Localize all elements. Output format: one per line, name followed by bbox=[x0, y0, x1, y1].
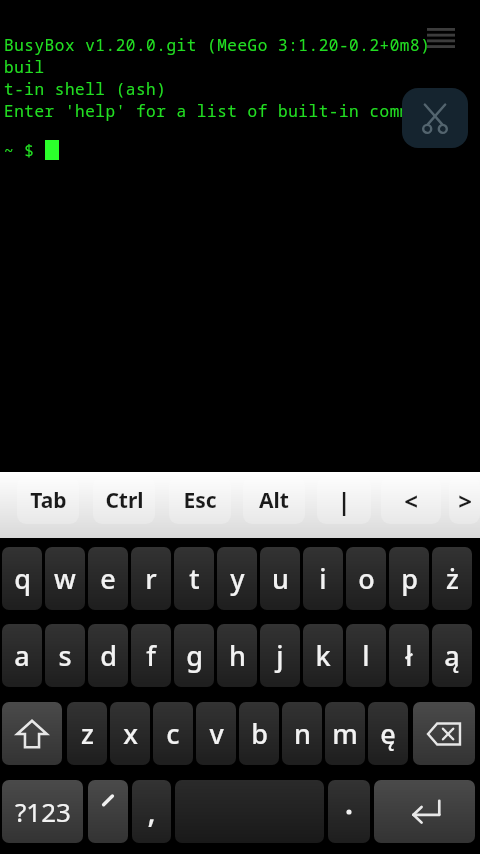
button[interactable]: Backspace bbox=[413, 702, 475, 765]
staticText: < bbox=[404, 484, 418, 517]
button[interactable]: ?123 bbox=[2, 780, 83, 843]
staticText: h bbox=[229, 637, 246, 674]
staticText: t bbox=[189, 560, 200, 597]
staticText: l bbox=[362, 637, 370, 674]
button[interactable]: j bbox=[260, 624, 300, 687]
button[interactable]: g bbox=[174, 624, 214, 687]
button[interactable]: > bbox=[449, 476, 480, 524]
button[interactable]: Cut bbox=[402, 88, 468, 148]
staticText: t-in shell (ash) bbox=[4, 78, 167, 100]
staticText: w bbox=[54, 560, 76, 597]
button[interactable]: w bbox=[45, 547, 85, 610]
button[interactable]: < bbox=[381, 476, 441, 524]
staticText: b bbox=[251, 715, 268, 752]
staticText: x bbox=[123, 715, 138, 752]
staticText: BusyBox v1.20.0.git (MeeGo 3:1.20-0.2+0m… bbox=[4, 34, 480, 78]
button[interactable]: c bbox=[153, 702, 193, 765]
staticText: Tab bbox=[30, 486, 67, 515]
staticText: c bbox=[166, 715, 180, 752]
staticText: s bbox=[58, 637, 72, 674]
button[interactable]: Space bbox=[175, 780, 324, 843]
button[interactable]: Ctrl bbox=[93, 476, 155, 524]
staticText: y bbox=[230, 560, 245, 597]
staticText: | bbox=[337, 484, 351, 517]
button[interactable]: ż bbox=[432, 547, 472, 610]
staticText: ?123 bbox=[15, 794, 71, 829]
button[interactable]: f bbox=[131, 624, 171, 687]
staticText: p bbox=[401, 560, 418, 597]
button[interactable]: n bbox=[282, 702, 322, 765]
staticText: Ctrl bbox=[105, 486, 144, 515]
button[interactable]: y bbox=[217, 547, 257, 610]
button[interactable]: ą bbox=[432, 624, 472, 687]
button[interactable]: i bbox=[303, 547, 343, 610]
staticText: , bbox=[147, 791, 156, 832]
staticText: Esc bbox=[183, 486, 217, 515]
button[interactable]: t bbox=[174, 547, 214, 610]
button[interactable]: l bbox=[346, 624, 386, 687]
staticText: g bbox=[186, 637, 203, 674]
staticText: k bbox=[315, 637, 331, 674]
button[interactable]: ę bbox=[368, 702, 408, 765]
button[interactable]: ł bbox=[389, 624, 429, 687]
button[interactable]: a bbox=[2, 624, 42, 687]
button[interactable]: e bbox=[88, 547, 128, 610]
staticText: o bbox=[358, 560, 375, 597]
button[interactable]: Shift bbox=[2, 702, 62, 765]
staticText: Alt bbox=[259, 486, 289, 515]
button[interactable]: z bbox=[67, 702, 107, 765]
button[interactable]: q bbox=[2, 547, 42, 610]
button[interactable]: Period bbox=[328, 780, 370, 843]
staticText: a bbox=[14, 637, 30, 674]
staticText: q bbox=[14, 560, 31, 597]
button[interactable]: Enter bbox=[374, 780, 475, 843]
button[interactable]: v bbox=[196, 702, 236, 765]
staticText: ł bbox=[405, 637, 413, 674]
button[interactable]: b bbox=[239, 702, 279, 765]
staticText: d bbox=[100, 637, 117, 674]
button[interactable]: s bbox=[45, 624, 85, 687]
staticText: m bbox=[332, 715, 358, 752]
staticText: ę bbox=[380, 715, 396, 752]
staticText: u bbox=[272, 560, 289, 597]
button[interactable]: Esc bbox=[169, 476, 231, 524]
button[interactable]: x bbox=[110, 702, 150, 765]
staticText: ż bbox=[446, 560, 459, 597]
staticText: Enter 'help' for a list of built-in comm… bbox=[4, 100, 461, 122]
staticText: r bbox=[145, 560, 157, 597]
button[interactable]: Tab bbox=[17, 476, 79, 524]
button[interactable]: , bbox=[132, 780, 171, 843]
staticText: n bbox=[294, 715, 311, 752]
staticText: i bbox=[319, 560, 327, 597]
button[interactable]: Menu bbox=[426, 26, 456, 50]
button[interactable]: k bbox=[303, 624, 343, 687]
staticText: f bbox=[146, 637, 156, 674]
button[interactable]: o bbox=[346, 547, 386, 610]
staticText: > bbox=[458, 484, 472, 517]
button[interactable]: u bbox=[260, 547, 300, 610]
staticText: e bbox=[100, 560, 116, 597]
button[interactable]: Alt bbox=[243, 476, 305, 524]
button[interactable]: Acute accent bbox=[88, 780, 128, 843]
button[interactable]: d bbox=[88, 624, 128, 687]
staticText: ~ $ bbox=[4, 140, 45, 162]
button[interactable]: h bbox=[217, 624, 257, 687]
button[interactable]: r bbox=[131, 547, 171, 610]
staticText: v bbox=[209, 715, 224, 752]
button[interactable]: p bbox=[389, 547, 429, 610]
staticText: z bbox=[81, 715, 94, 752]
button[interactable]: | bbox=[317, 476, 371, 524]
button[interactable]: m bbox=[325, 702, 365, 765]
staticText: ą bbox=[444, 637, 460, 674]
staticText: j bbox=[276, 637, 284, 674]
